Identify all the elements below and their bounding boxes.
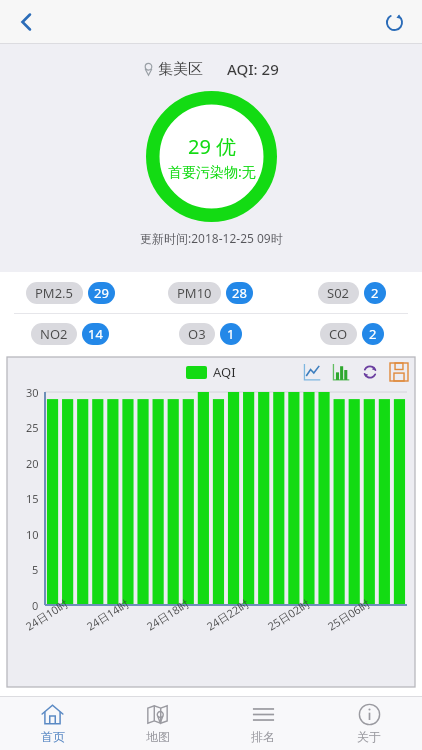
staticText: 24日14时 — [84, 595, 132, 634]
button[interactable]: PM10 — [140, 272, 281, 313]
button[interactable]: Bar chart — [330, 361, 352, 383]
staticText: 更新时间:2018-12-25 09时 — [140, 230, 283, 246]
staticText: 首要污染物:无 — [168, 162, 256, 181]
button[interactable]: 地图 — [105, 697, 210, 750]
button[interactable]: PM2.5 — [0, 272, 140, 313]
staticText: 首页 — [41, 729, 65, 744]
staticText: 2 — [369, 325, 377, 343]
staticText: 25 — [26, 420, 39, 435]
button[interactable]: 排名 — [210, 697, 316, 750]
staticText: O3 — [188, 325, 206, 343]
staticText: 15 — [26, 491, 39, 506]
staticText: PM2.5 — [35, 284, 74, 302]
button[interactable]: Back — [6, 2, 46, 42]
staticText: 20 — [26, 456, 39, 471]
staticText: 2 — [371, 284, 379, 302]
button[interactable]: Refresh chart — [359, 361, 381, 383]
staticText: CO — [329, 325, 348, 343]
staticText: 排名 — [251, 729, 275, 744]
button[interactable]: Refresh — [374, 2, 414, 42]
staticText: 29 — [94, 284, 109, 302]
staticText: 5 — [32, 562, 39, 577]
button[interactable]: CO — [281, 314, 422, 353]
staticText: 29 优 — [188, 133, 237, 160]
staticText: 14 — [88, 325, 103, 343]
button[interactable]: Line chart — [301, 361, 323, 383]
staticText: AQI — [213, 363, 236, 381]
staticText: 24日18时 — [144, 595, 192, 634]
button[interactable]: NO2 — [0, 314, 140, 353]
staticText: 24日22时 — [204, 595, 252, 634]
staticText: 24日10时 — [23, 595, 71, 634]
staticText: 25日02时 — [265, 595, 313, 634]
staticText: 10 — [26, 527, 39, 542]
button[interactable]: S02 — [281, 272, 422, 313]
staticText: 28 — [232, 284, 247, 302]
staticText: 1 — [227, 325, 235, 343]
button[interactable]: 首页 — [0, 697, 105, 750]
staticText: 地图 — [146, 729, 170, 744]
staticText: 0 — [32, 598, 39, 613]
staticText: 30 — [26, 385, 39, 400]
button[interactable]: 关于 — [316, 697, 422, 750]
button[interactable]: Save — [388, 361, 410, 383]
button[interactable]: O3 — [140, 314, 281, 353]
staticText: 关于 — [357, 729, 381, 744]
staticText: PM10 — [177, 284, 212, 302]
staticText: AQI: 29 — [227, 59, 279, 79]
staticText: 集美区 — [158, 60, 203, 79]
staticText: NO2 — [40, 325, 68, 343]
staticText: S02 — [327, 284, 350, 302]
staticText: 25日06时 — [325, 595, 373, 634]
